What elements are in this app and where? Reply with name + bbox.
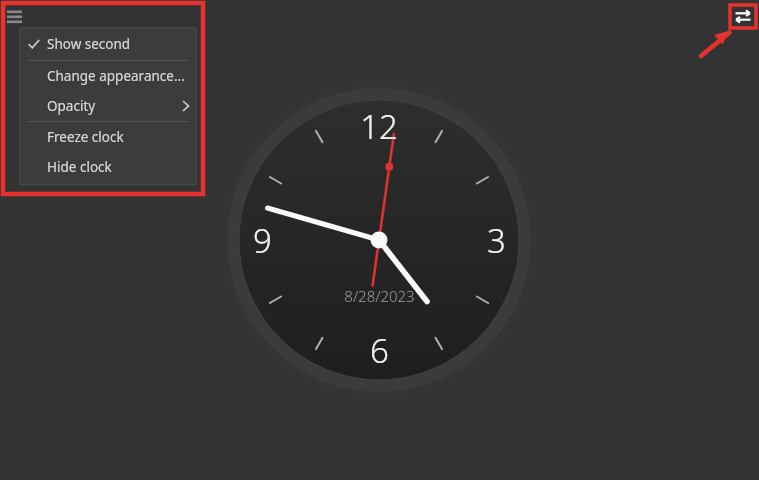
staticText: 8/28/2023 [344,286,415,306]
staticText: Hide clock [47,158,112,176]
button[interactable]: Hide clock [20,152,196,182]
button[interactable]: Show second [20,28,196,60]
staticText: 9 [253,218,272,262]
staticText: Freeze clock [47,128,124,146]
button[interactable]: Menu [4,6,26,26]
button[interactable]: Opacity [20,91,196,121]
button[interactable]: Freeze clock [20,122,196,152]
staticText: Opacity [47,97,96,115]
staticText: Change appearance... [47,67,185,85]
staticText: Show second [47,35,131,53]
button[interactable]: Change appearance... [20,61,196,91]
staticText: 6 [370,328,389,372]
button[interactable]: Swap layout [729,4,757,29]
staticText: 12 [360,104,398,148]
staticText: 3 [487,218,506,262]
